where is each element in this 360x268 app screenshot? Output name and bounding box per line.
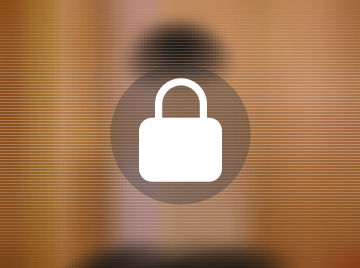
button[interactable]: Locked content [110,64,250,204]
